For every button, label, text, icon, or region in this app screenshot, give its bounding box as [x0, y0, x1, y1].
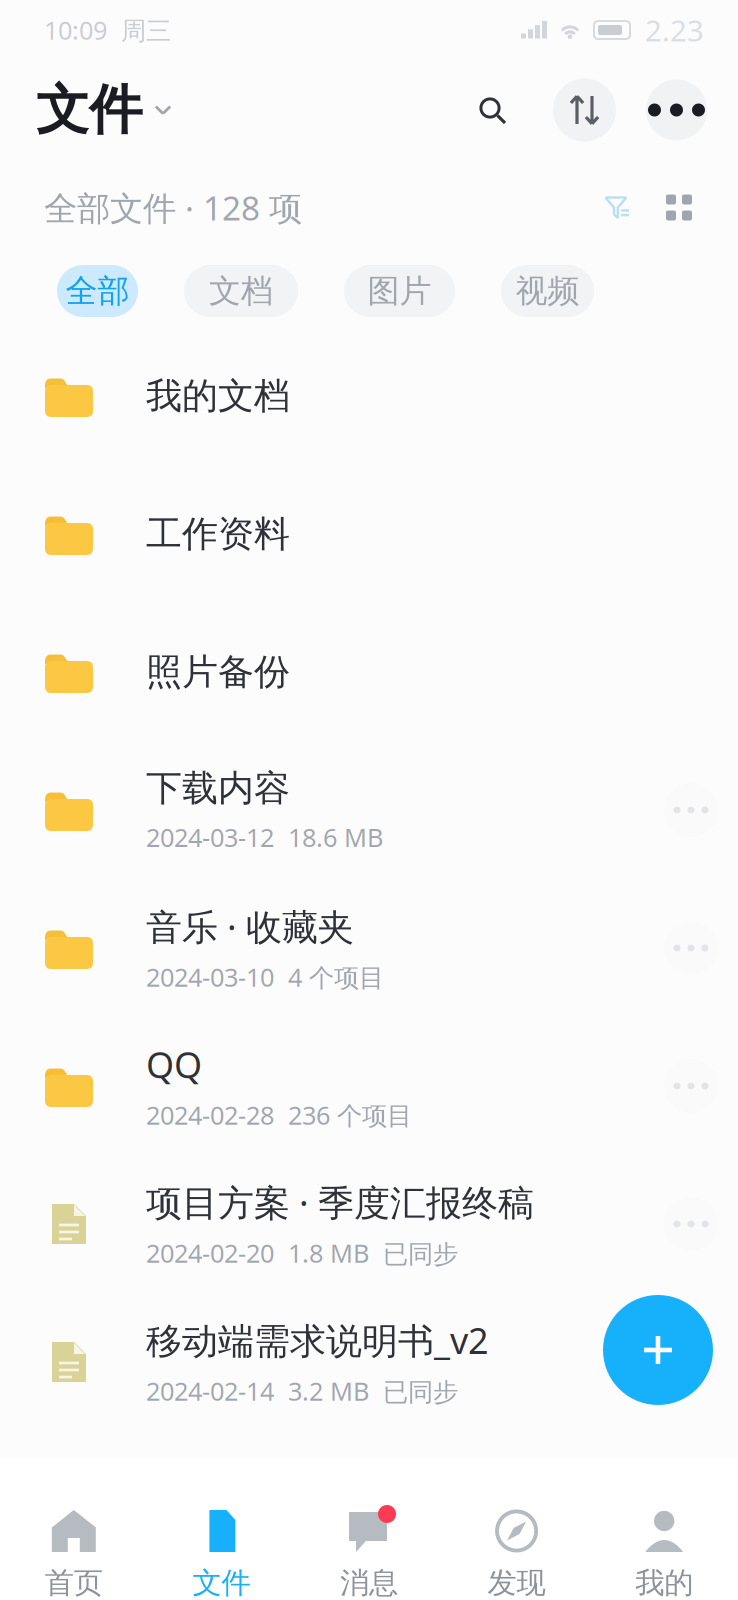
staticText: 移动端需求说明书_v2 — [146, 1316, 489, 1364]
staticText: 2024-02-20 1.8 MB 已同步 — [146, 1236, 458, 1270]
staticText: 发现 — [488, 1565, 546, 1600]
button[interactable]: 全部文件 · 128 项 — [44, 175, 302, 239]
staticText: 照片备份 — [146, 650, 290, 694]
staticText: 视频 — [515, 271, 579, 311]
button[interactable]: 工作资料 — [0, 465, 738, 603]
staticText: 文档 — [209, 271, 273, 311]
button[interactable]: 发现 — [443, 1458, 590, 1600]
button[interactable]: 文档 — [184, 265, 298, 317]
staticText: 2.23 — [645, 10, 704, 49]
button[interactable]: 视频 — [501, 265, 594, 317]
staticText: 2024-03-10 4 个项目 — [146, 960, 384, 994]
button[interactable]: 图片 — [344, 265, 455, 317]
staticText: 音乐 · 收藏夹 — [146, 902, 354, 950]
button[interactable]: 我的 — [590, 1458, 738, 1600]
staticText: 工作资料 — [146, 512, 290, 556]
staticText: 文件 — [192, 1565, 250, 1600]
button[interactable]: New file — [603, 1295, 713, 1405]
button[interactable]: More options — [646, 79, 707, 140]
button[interactable]: 音乐 · 收藏夹 — [0, 879, 738, 1017]
button[interactable]: 消息 — [295, 1458, 443, 1600]
staticText: 下载内容 — [146, 766, 290, 810]
button[interactable]: Search — [461, 79, 523, 141]
staticText: 全部 — [65, 271, 129, 311]
staticText: 我的文档 — [146, 374, 290, 418]
button[interactable]: 下载内容 — [0, 741, 738, 879]
staticText: 首页 — [45, 1565, 103, 1600]
button[interactable]: 移动端需求说明书_v2 — [0, 1293, 738, 1431]
staticText: 2024-03-12 18.6 MB — [146, 820, 383, 854]
button[interactable]: QQ — [0, 1017, 738, 1155]
button[interactable]: Switch to grid view — [648, 176, 710, 238]
button[interactable]: Filter — [586, 176, 648, 238]
button[interactable]: 我的文档 — [0, 327, 738, 465]
button[interactable]: 照片备份 — [0, 603, 738, 741]
button[interactable]: 项目方案 · 季度汇报终稿 — [0, 1155, 738, 1293]
staticText: 我的 — [635, 1565, 693, 1600]
staticText: 项目方案 · 季度汇报终稿 — [146, 1178, 534, 1226]
button[interactable]: 全部 — [57, 265, 138, 317]
staticText: 图片 — [367, 271, 431, 311]
button[interactable]: 首页 — [0, 1458, 148, 1600]
staticText: 2024-02-28 236 个项目 — [146, 1098, 412, 1132]
staticText: 10:09 周三 — [44, 13, 171, 47]
staticText: 2024-02-14 3.2 MB 已同步 — [146, 1374, 458, 1408]
staticText: 全部文件 · 128 项 — [44, 185, 302, 230]
staticText: 文件 — [36, 77, 142, 143]
staticText: QQ — [146, 1040, 202, 1088]
button[interactable]: 文件 — [148, 1458, 295, 1600]
button[interactable]: Sort — [553, 78, 616, 141]
button[interactable]: 文件 — [36, 64, 180, 156]
staticText: 消息 — [340, 1565, 398, 1600]
